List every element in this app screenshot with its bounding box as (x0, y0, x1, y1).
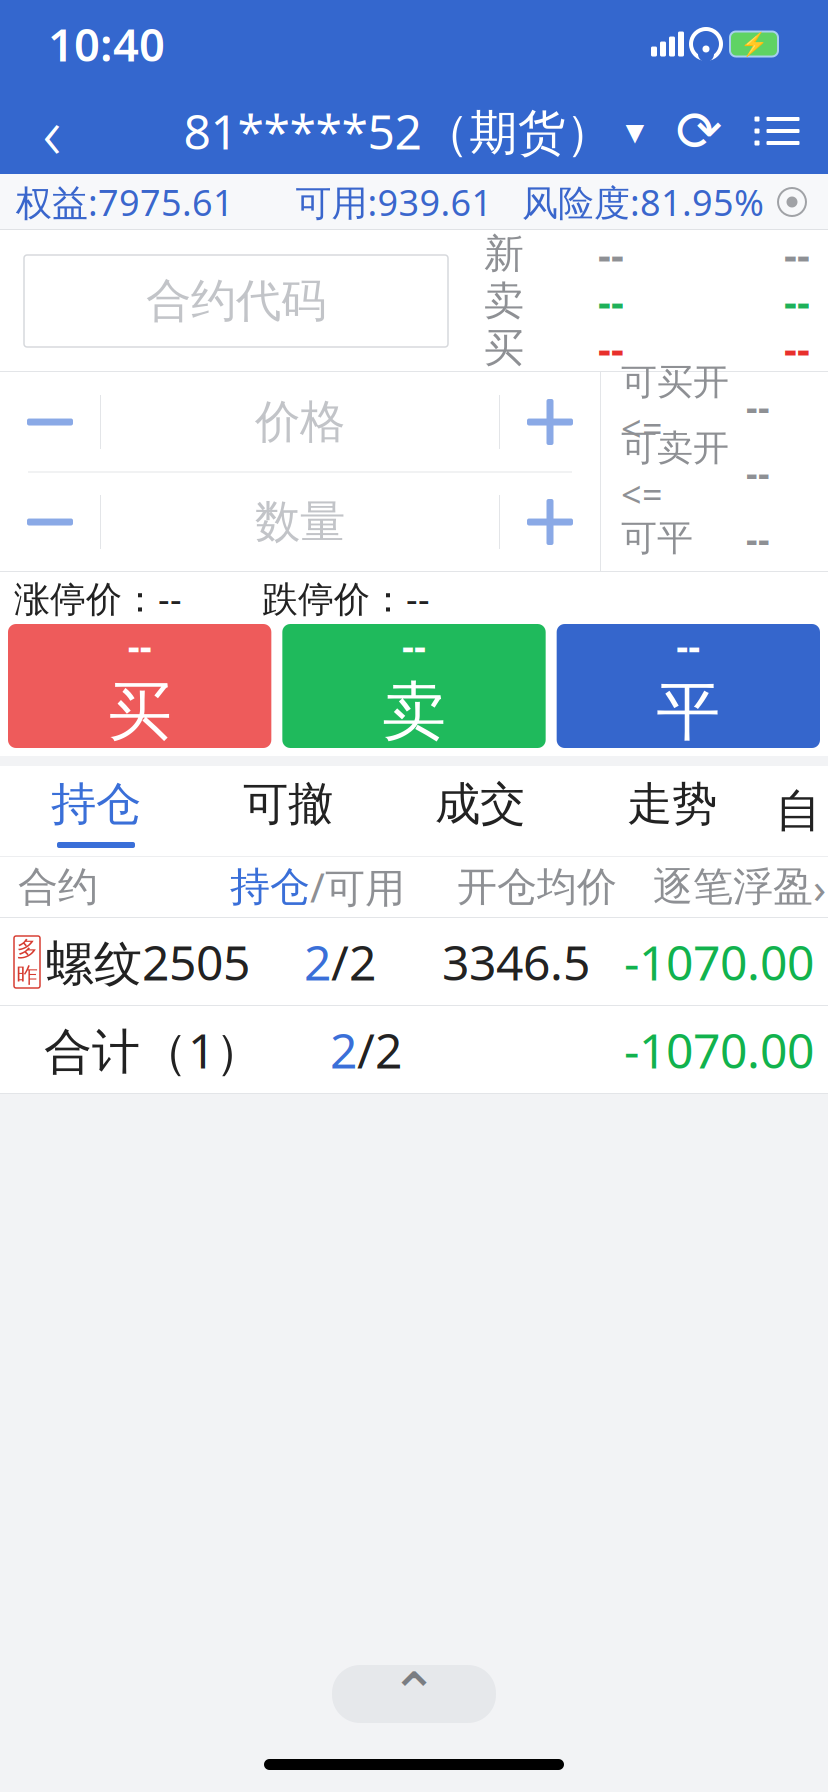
button[interactable]: Refresh (660, 91, 738, 171)
button[interactable]: Decrease 数量 (0, 473, 100, 571)
button[interactable]: 成交 (384, 766, 576, 856)
staticText: 可用:939.61 (295, 178, 492, 226)
button[interactable]: 价格 (101, 373, 499, 471)
button[interactable]: Back (12, 91, 92, 171)
staticText: 合约 (18, 862, 98, 911)
staticText: 自 (775, 783, 820, 839)
staticText: 买 (484, 323, 524, 372)
staticText: 81*****52（期货） (183, 99, 613, 163)
staticText: 可撤 (243, 776, 333, 832)
staticText: -- (746, 448, 770, 496)
staticText: ⚡ (740, 31, 768, 57)
staticText: 可买开<= (621, 360, 729, 452)
button[interactable]: Increase 数量 (500, 473, 600, 571)
staticText: -1070.00 (624, 930, 814, 994)
staticText: -- (598, 321, 624, 374)
staticText: -- (128, 621, 152, 670)
button[interactable]: 多 (0, 918, 828, 1006)
staticText: 多 (16, 936, 37, 962)
staticText: 3346.5 (442, 930, 590, 994)
staticText: 卖 (382, 672, 446, 751)
staticText: 可卖开<= (621, 426, 729, 518)
button[interactable]: Menu (738, 91, 816, 171)
staticText: -- (402, 621, 426, 670)
staticText: 平 (656, 672, 720, 751)
staticText: -- (598, 227, 624, 280)
staticText: 开仓均价 (457, 862, 617, 911)
staticText: -- (598, 274, 624, 327)
staticText: 走势 (627, 776, 717, 832)
staticText: 卖 (484, 276, 524, 325)
staticText: -1070.00 (624, 1018, 814, 1082)
staticText: 跌停价：-- (262, 574, 430, 622)
staticText: 新 (484, 229, 524, 278)
staticText: 持仓 (51, 776, 141, 832)
staticText: -- (676, 621, 700, 670)
button[interactable]: -- (282, 624, 546, 748)
staticText: -- (746, 382, 770, 430)
staticText: ⌃ (389, 1661, 438, 1727)
staticText: -- (784, 321, 810, 374)
staticText: /2 (331, 930, 376, 994)
button[interactable]: Toggle visibility (764, 176, 820, 228)
staticText: ▾ (625, 110, 644, 152)
staticText: 涨停价：-- (14, 574, 182, 622)
staticText: 可平 (621, 516, 693, 560)
staticText: 权益:7975.61 (16, 178, 234, 226)
staticText: 买 (108, 672, 172, 751)
staticText: ‹ (42, 83, 61, 179)
button[interactable]: 数量 (101, 473, 499, 571)
button[interactable]: 合约代码 (0, 229, 472, 373)
staticText: 2 (330, 1018, 357, 1082)
staticText: 2 (304, 930, 331, 994)
staticText: 持仓 (230, 862, 310, 911)
staticText: -- (746, 514, 770, 562)
button[interactable]: 走势 (576, 766, 768, 856)
button[interactable]: Decrease 价格 (0, 373, 100, 471)
button[interactable]: -- (557, 624, 820, 748)
button[interactable]: 可撤 (192, 766, 384, 856)
button[interactable]: 持仓 (0, 766, 192, 856)
staticText: 逐笔浮盈 (653, 862, 813, 911)
staticText: ⟳ (675, 99, 722, 163)
button[interactable]: Increase 价格 (500, 373, 600, 471)
button[interactable]: 81*****52（期货） (173, 91, 654, 171)
staticText: 螺纹2505 (46, 930, 250, 994)
staticText: 昨 (16, 962, 37, 988)
button[interactable]: Expand (332, 1665, 496, 1723)
staticText: › (813, 859, 826, 915)
button[interactable]: 自 (768, 767, 828, 855)
staticText: 10:40 (48, 14, 165, 74)
staticText: -- (784, 274, 810, 327)
staticText: 风险度:81.95% (522, 178, 764, 226)
staticText: -- (784, 227, 810, 280)
staticText: /可用 (310, 860, 405, 913)
staticText: 成交 (435, 776, 525, 832)
staticText: 价格 (255, 394, 345, 450)
button[interactable]: -- (8, 624, 271, 748)
staticText: /2 (357, 1018, 402, 1082)
staticText: 数量 (255, 494, 345, 550)
staticText: 合计（1） (44, 1018, 263, 1082)
staticText: 合约代码 (146, 273, 326, 329)
